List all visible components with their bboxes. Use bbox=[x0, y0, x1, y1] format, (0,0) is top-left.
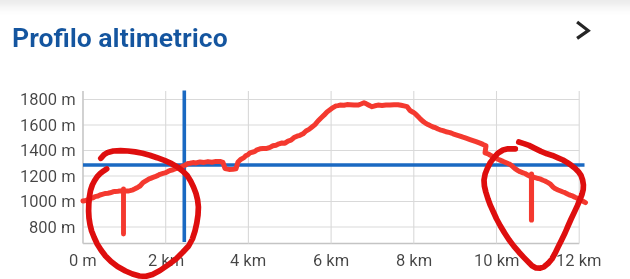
staticText: 800 m bbox=[29, 218, 76, 237]
staticText: 12 km bbox=[556, 251, 602, 270]
staticText: 10 km bbox=[474, 251, 520, 270]
staticText: 8 km bbox=[396, 251, 433, 270]
staticText: 6 km bbox=[313, 251, 350, 270]
staticText: 1200 m bbox=[20, 167, 76, 186]
staticText: 4 km bbox=[230, 251, 267, 270]
staticText: 1600 m bbox=[20, 116, 76, 135]
button[interactable]: Apri profilo altimetrico bbox=[561, 8, 605, 52]
staticText: 1800 m bbox=[20, 90, 76, 109]
staticText: 0 m bbox=[69, 251, 97, 270]
staticText: Profilo altimetrico bbox=[12, 22, 228, 53]
staticText: 1000 m bbox=[20, 192, 76, 211]
staticText: 2 km bbox=[148, 251, 185, 270]
staticText: 1400 m bbox=[20, 141, 76, 160]
